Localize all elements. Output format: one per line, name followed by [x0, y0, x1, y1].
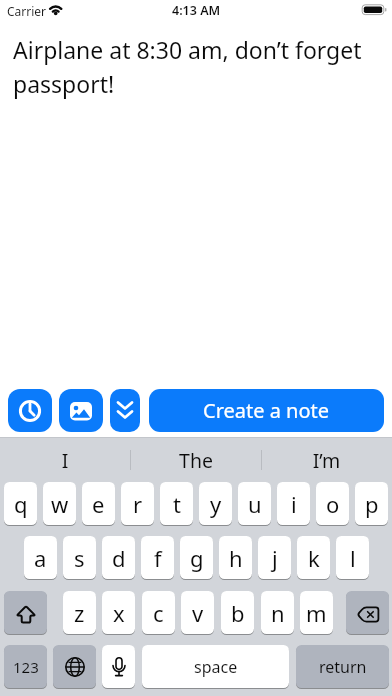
button[interactable]: y: [199, 482, 232, 525]
button[interactable]: Create a note: [149, 389, 384, 432]
staticText: a: [34, 543, 47, 573]
button[interactable]: e: [82, 482, 115, 525]
staticText: b: [231, 598, 245, 628]
staticText: return: [319, 656, 367, 678]
button[interactable]: v: [181, 591, 214, 634]
staticText: 123: [13, 657, 39, 677]
button[interactable]: c: [142, 591, 175, 634]
button[interactable]: j: [258, 536, 291, 579]
staticText: r: [133, 489, 143, 519]
button[interactable]: [346, 591, 389, 634]
staticText: s: [74, 543, 85, 573]
button[interactable]: d: [102, 536, 135, 579]
staticText: n: [271, 598, 285, 628]
button[interactable]: [110, 389, 140, 432]
staticText: e: [92, 489, 105, 519]
button[interactable]: o: [316, 482, 349, 525]
button[interactable]: [59, 389, 103, 432]
button[interactable]: n: [261, 591, 294, 634]
button[interactable]: m: [300, 591, 333, 634]
staticText: k: [308, 543, 320, 573]
staticText: f: [154, 543, 162, 573]
button[interactable]: s: [63, 536, 96, 579]
staticText: p: [365, 489, 379, 519]
staticText: j: [272, 543, 278, 573]
staticText: c: [153, 598, 164, 628]
staticText: q: [14, 489, 28, 519]
staticText: o: [326, 489, 340, 519]
button[interactable]: a: [24, 536, 57, 579]
staticText: 4:13 AM: [172, 2, 221, 19]
button[interactable]: w: [43, 482, 76, 525]
button[interactable]: r: [121, 482, 154, 525]
button[interactable]: p: [355, 482, 388, 525]
button[interactable]: g: [180, 536, 213, 579]
button[interactable]: 123: [4, 645, 47, 688]
button[interactable]: t: [160, 482, 193, 525]
button[interactable]: u: [238, 482, 271, 525]
staticText: y: [210, 489, 222, 519]
button[interactable]: q: [4, 482, 37, 525]
staticText: v: [192, 598, 204, 628]
button[interactable]: z: [63, 591, 96, 634]
button[interactable]: [4, 591, 47, 634]
staticText: I’m: [261, 447, 392, 474]
button[interactable]: space: [142, 645, 289, 688]
staticText: Create a note: [203, 397, 330, 424]
staticText: z: [74, 598, 85, 628]
staticText: I: [0, 447, 130, 474]
staticText: Carrier: [7, 3, 47, 19]
button[interactable]: b: [221, 591, 254, 634]
button[interactable]: i: [277, 482, 310, 525]
staticText: t: [173, 489, 181, 519]
staticText: space: [194, 656, 238, 678]
button[interactable]: [102, 645, 135, 688]
staticText: x: [113, 598, 125, 628]
button[interactable]: return: [296, 645, 389, 688]
button[interactable]: [8, 389, 52, 432]
staticText: u: [248, 489, 262, 519]
staticText: l: [350, 543, 356, 573]
staticText: i: [291, 489, 297, 519]
button[interactable]: l: [336, 536, 369, 579]
button[interactable]: [53, 645, 96, 688]
staticText: Airplane at 8:30 am, don’t forget passpo…: [13, 34, 381, 100]
staticText: g: [190, 543, 204, 573]
staticText: d: [112, 543, 126, 573]
staticText: w: [51, 489, 69, 519]
button[interactable]: k: [297, 536, 330, 579]
button[interactable]: h: [219, 536, 252, 579]
button[interactable]: f: [141, 536, 174, 579]
staticText: m: [306, 598, 327, 628]
staticText: The: [131, 447, 261, 474]
staticText: h: [229, 543, 243, 573]
button[interactable]: x: [102, 591, 135, 634]
